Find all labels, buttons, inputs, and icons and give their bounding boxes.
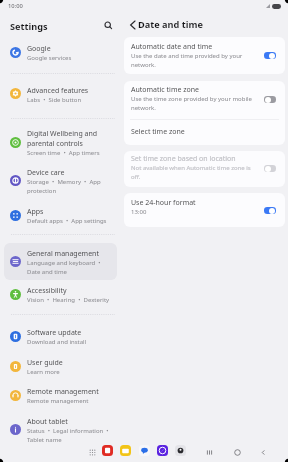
staticText: Labs • Side button — [27, 96, 82, 104]
button[interactable] — [124, 193, 285, 227]
staticText: Vision • Hearing • Dexterity — [27, 296, 110, 304]
staticText: Google services — [27, 54, 72, 62]
staticText: Accessibility — [27, 286, 67, 296]
button[interactable]: App — [102, 445, 113, 456]
button[interactable] — [4, 353, 117, 378]
staticText: Date and time — [138, 18, 203, 31]
staticText: Date and time — [27, 268, 67, 276]
staticText: protection — [27, 187, 57, 195]
staticText: Default apps • App settings — [27, 217, 107, 225]
staticText: About tablet — [27, 417, 68, 427]
staticText: Automatic time zone — [131, 85, 199, 95]
button[interactable] — [4, 163, 117, 197]
button[interactable] — [124, 37, 285, 74]
button[interactable] — [4, 81, 117, 106]
staticText: Use the time zone provided by your mobil… — [131, 95, 252, 103]
button[interactable] — [4, 39, 117, 64]
button[interactable] — [124, 81, 285, 119]
staticText: network. — [131, 104, 156, 112]
button[interactable]: Recents — [203, 446, 216, 459]
button[interactable]: App — [157, 445, 168, 456]
staticText: network. — [131, 61, 156, 69]
staticText: 13:00 — [131, 208, 147, 216]
button[interactable] — [4, 382, 117, 407]
button[interactable]: Toggle — [264, 165, 276, 172]
button[interactable]: Toggle — [264, 207, 276, 214]
staticText: Apps — [27, 207, 44, 217]
button[interactable]: App — [120, 445, 131, 456]
button[interactable]: Search — [100, 16, 117, 33]
staticText: Remote management — [27, 397, 89, 405]
staticText: Digital Wellbeing and — [27, 129, 98, 139]
staticText: 10:00 — [8, 2, 23, 10]
staticText: Language and keyboard • — [27, 259, 101, 267]
staticText: Tablet name — [27, 436, 62, 444]
staticText: Screen time • App timers — [27, 149, 100, 157]
staticText: Advanced features — [27, 86, 89, 96]
staticText: Remote management — [27, 387, 99, 397]
button[interactable]: Home — [231, 446, 244, 459]
button[interactable]: App — [139, 445, 150, 456]
staticText: off. — [131, 173, 141, 181]
staticText: Use the date and time provided by your — [131, 52, 243, 60]
button[interactable]: All apps — [86, 446, 98, 458]
staticText: Automatic date and time — [131, 42, 213, 52]
staticText: Settings — [10, 20, 48, 33]
staticText: parental controls — [27, 139, 83, 149]
staticText: Learn more — [27, 368, 60, 376]
button[interactable] — [4, 412, 117, 446]
staticText: Storage • Memory • App — [27, 178, 101, 186]
button[interactable] — [124, 151, 285, 187]
button[interactable]: Toggle — [264, 52, 276, 59]
button[interactable] — [4, 281, 117, 306]
button[interactable]: Back — [257, 446, 270, 459]
staticText: General management — [27, 249, 99, 259]
button[interactable]: App — [175, 445, 186, 456]
staticText: Software update — [27, 328, 82, 338]
button[interactable] — [4, 323, 117, 348]
button[interactable] — [4, 244, 117, 278]
staticText: Not available when Automatic time zone i… — [131, 164, 251, 172]
button[interactable]: Back — [125, 17, 141, 33]
staticText: Download and install — [27, 338, 87, 346]
staticText: Google — [27, 44, 51, 54]
button[interactable] — [4, 202, 117, 227]
button[interactable] — [4, 124, 117, 159]
staticText: Device care — [27, 168, 65, 178]
button[interactable]: Toggle — [264, 96, 276, 103]
staticText: User guide — [27, 358, 63, 368]
staticText: Set time zone based on location — [131, 154, 236, 164]
staticText: Status • Legal information • — [27, 427, 109, 435]
staticText: Select time zone — [131, 127, 185, 137]
button[interactable] — [124, 120, 285, 145]
staticText: Use 24-hour format — [131, 198, 196, 208]
